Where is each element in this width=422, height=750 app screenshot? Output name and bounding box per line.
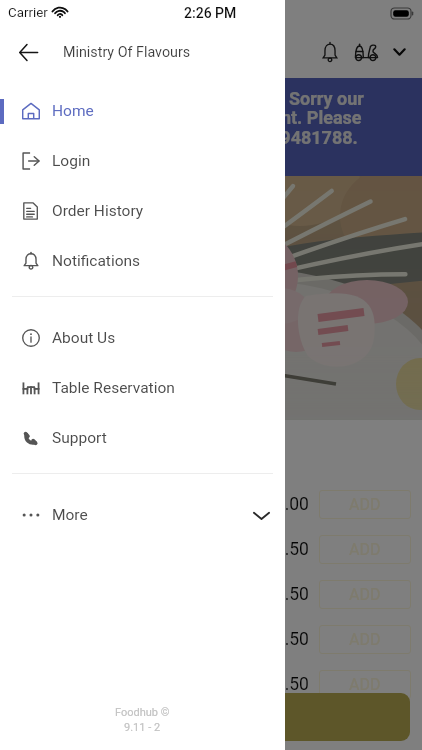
button[interactable]: Home (0, 86, 285, 136)
staticText: More (52, 506, 88, 524)
button[interactable]: Menu Item (0, 482, 422, 527)
button[interactable]: Back (0, 26, 56, 78)
button[interactable]: ADD (319, 625, 411, 654)
button[interactable]: Login (0, 136, 285, 186)
staticText: Carrier (8, 5, 48, 21)
button[interactable]: Menu Item (0, 662, 422, 707)
button[interactable]: ADD (319, 670, 411, 699)
button[interactable]: Table Reservation (0, 363, 285, 413)
staticText: ADD (349, 675, 381, 694)
staticText: About Us (52, 329, 116, 347)
button[interactable]: More (0, 490, 285, 540)
staticText: Foodhub © (115, 706, 170, 719)
button[interactable]: ADD (319, 490, 411, 519)
staticText: Login (52, 152, 91, 170)
staticText: Starters (14, 440, 76, 460)
staticText: 11.50 (265, 584, 309, 605)
staticText: 9.11 - 2 (124, 721, 161, 734)
button[interactable]: Notifications (0, 236, 285, 286)
button[interactable]: Menu Item (0, 527, 422, 572)
staticText: Sorry, we are currently closed, Sorry ou… (41, 88, 364, 149)
button[interactable]: Menu Item (0, 572, 422, 617)
staticText: 10.00 (265, 494, 309, 515)
button[interactable]: Delivery mode (348, 30, 385, 74)
button[interactable]: ADD (319, 535, 411, 564)
staticText: 11.50 (265, 674, 309, 695)
button[interactable]: Notifications (311, 30, 348, 74)
staticText: 12.50 (265, 539, 309, 560)
staticText: Support (52, 429, 107, 447)
staticText: View Basket (167, 708, 256, 727)
button[interactable]: ADD (319, 580, 411, 609)
staticText: Ministry Of Flavours (63, 44, 191, 61)
staticText: 2:26 PM (184, 5, 237, 21)
button[interactable]: Support (0, 413, 285, 463)
button[interactable]: Menu Item (0, 617, 422, 662)
staticText: 11.50 (265, 629, 309, 650)
button[interactable]: View Basket (12, 693, 410, 741)
staticText: ADD (349, 495, 381, 514)
staticText: Notifications (52, 252, 141, 270)
button[interactable]: About Us (0, 313, 285, 363)
button[interactable]: Order History (0, 186, 285, 236)
staticText: Home (52, 102, 94, 120)
staticText: Menu Item (11, 496, 83, 514)
staticText: ADD (349, 630, 381, 649)
staticText: Order History (52, 202, 144, 220)
staticText: Table Reservation (52, 379, 175, 397)
staticText: ADD (349, 540, 381, 559)
button[interactable]: Expand (385, 30, 413, 74)
staticText: ADD (349, 585, 381, 604)
